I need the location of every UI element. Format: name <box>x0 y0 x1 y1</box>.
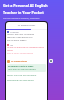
staticText: like to learn today? <box>7 39 27 42</box>
staticText: AI Suggestions <box>11 60 28 63</box>
staticText: You <box>10 44 14 46</box>
staticText: something you had done? <box>7 79 34 82</box>
staticText: tense. Can you tell me about <box>7 74 37 77</box>
staticText: Teacher in Your Pocket <box>3 10 44 15</box>
staticText: I'd like to practise my speaking skills … <box>7 46 46 52</box>
staticText: with a short conversation <box>7 52 34 55</box>
staticText: teacher. What would you <box>7 36 33 39</box>
staticText: Let's work on the past perfect <box>8 68 36 71</box>
staticText: Get a Personal AI English <box>3 3 48 8</box>
staticText: Grammar Practice Today <box>8 65 34 68</box>
staticText: AI Teacher <box>10 31 19 33</box>
staticText: AI English Tutor <box>6 24 47 27</box>
staticText: Practise speaking anytime, anywhere <box>3 17 40 20</box>
staticText: Hello! I am your AI English <box>7 33 35 36</box>
